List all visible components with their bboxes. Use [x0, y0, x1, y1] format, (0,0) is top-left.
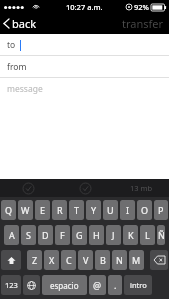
staticText: 10:27 a.m. [66, 2, 103, 12]
staticText: N [116, 254, 123, 266]
button[interactable]: X [44, 250, 59, 270]
staticText: Ñ [158, 229, 165, 241]
staticText: A [9, 229, 15, 241]
button[interactable]: 13 mb [113, 179, 169, 197]
staticText: C [66, 254, 72, 266]
staticText: Y [91, 204, 97, 216]
button[interactable]: W [18, 200, 33, 220]
staticText: Q [5, 204, 13, 216]
button[interactable]: Y [86, 200, 101, 220]
staticText: 92% [134, 2, 149, 12]
button[interactable]: A [4, 225, 19, 245]
button[interactable]: K [123, 225, 138, 245]
staticText: W [21, 204, 30, 216]
button[interactable]: back [0, 13, 45, 34]
staticText: R [57, 204, 63, 216]
staticText: P [158, 204, 164, 216]
staticText: F [60, 229, 65, 241]
staticText: espacio [50, 280, 79, 291]
staticText: S [26, 229, 31, 241]
button[interactable]: espacio [42, 275, 87, 295]
button[interactable]: C [61, 250, 76, 270]
button[interactable]: O [137, 200, 152, 220]
staticText: intro [130, 280, 147, 290]
staticText: transfer [122, 16, 164, 31]
button[interactable]: . [108, 275, 122, 295]
button[interactable]: J [106, 225, 121, 245]
staticText: K [128, 229, 134, 241]
staticText: X [49, 254, 55, 266]
button[interactable]: from [0, 56, 169, 78]
staticText: J [112, 229, 115, 241]
staticText: V [83, 254, 89, 266]
staticText: D [42, 229, 49, 241]
button[interactable] [0, 179, 57, 197]
staticText: O [141, 204, 149, 216]
staticText: H [93, 229, 100, 241]
button[interactable]: intro [124, 275, 152, 295]
button[interactable]: I [120, 200, 135, 220]
button[interactable]: to [0, 34, 169, 56]
button[interactable]: U [103, 200, 118, 220]
button[interactable]: F [55, 225, 70, 245]
button[interactable]: V [78, 250, 93, 270]
staticText: back [12, 16, 37, 31]
button[interactable]: transfer [114, 13, 169, 34]
button[interactable]: S [21, 225, 36, 245]
button[interactable]: Backspace [150, 250, 168, 270]
staticText: to [7, 39, 16, 51]
staticText: . [114, 279, 117, 291]
staticText: U [107, 204, 114, 216]
button[interactable]: M [129, 250, 144, 270]
staticText: 13 mb [130, 183, 153, 193]
button[interactable]: G [72, 225, 87, 245]
staticText: 123 [5, 280, 18, 290]
button[interactable]: H [89, 225, 104, 245]
staticText: from [7, 61, 27, 73]
staticText: I [126, 204, 130, 216]
staticText: L [145, 229, 150, 241]
staticText: E [40, 204, 46, 216]
button[interactable]: Z [27, 250, 42, 270]
button[interactable]: N [112, 250, 127, 270]
button[interactable]: message [0, 78, 169, 99]
staticText: @ [93, 279, 102, 291]
button[interactable]: @ [89, 275, 106, 295]
button[interactable]: D [38, 225, 53, 245]
button[interactable]: L [140, 225, 155, 245]
button[interactable]: E [35, 200, 50, 220]
button[interactable]: Q [1, 200, 16, 220]
button[interactable]: R [52, 200, 67, 220]
staticText: Z [32, 254, 38, 266]
staticText: T [74, 204, 80, 216]
button[interactable] [57, 179, 113, 197]
staticText: M [132, 254, 141, 266]
button[interactable]: 123 [1, 275, 21, 295]
button[interactable]: T [69, 200, 84, 220]
button[interactable]: B [95, 250, 110, 270]
staticText: message [7, 83, 43, 95]
staticText: G [76, 229, 83, 241]
button[interactable]: Ñ [157, 225, 165, 245]
staticText: B [100, 254, 106, 266]
button[interactable]: P [154, 200, 168, 220]
button[interactable]: Globe [23, 275, 40, 295]
button[interactable]: Shift [1, 250, 21, 270]
